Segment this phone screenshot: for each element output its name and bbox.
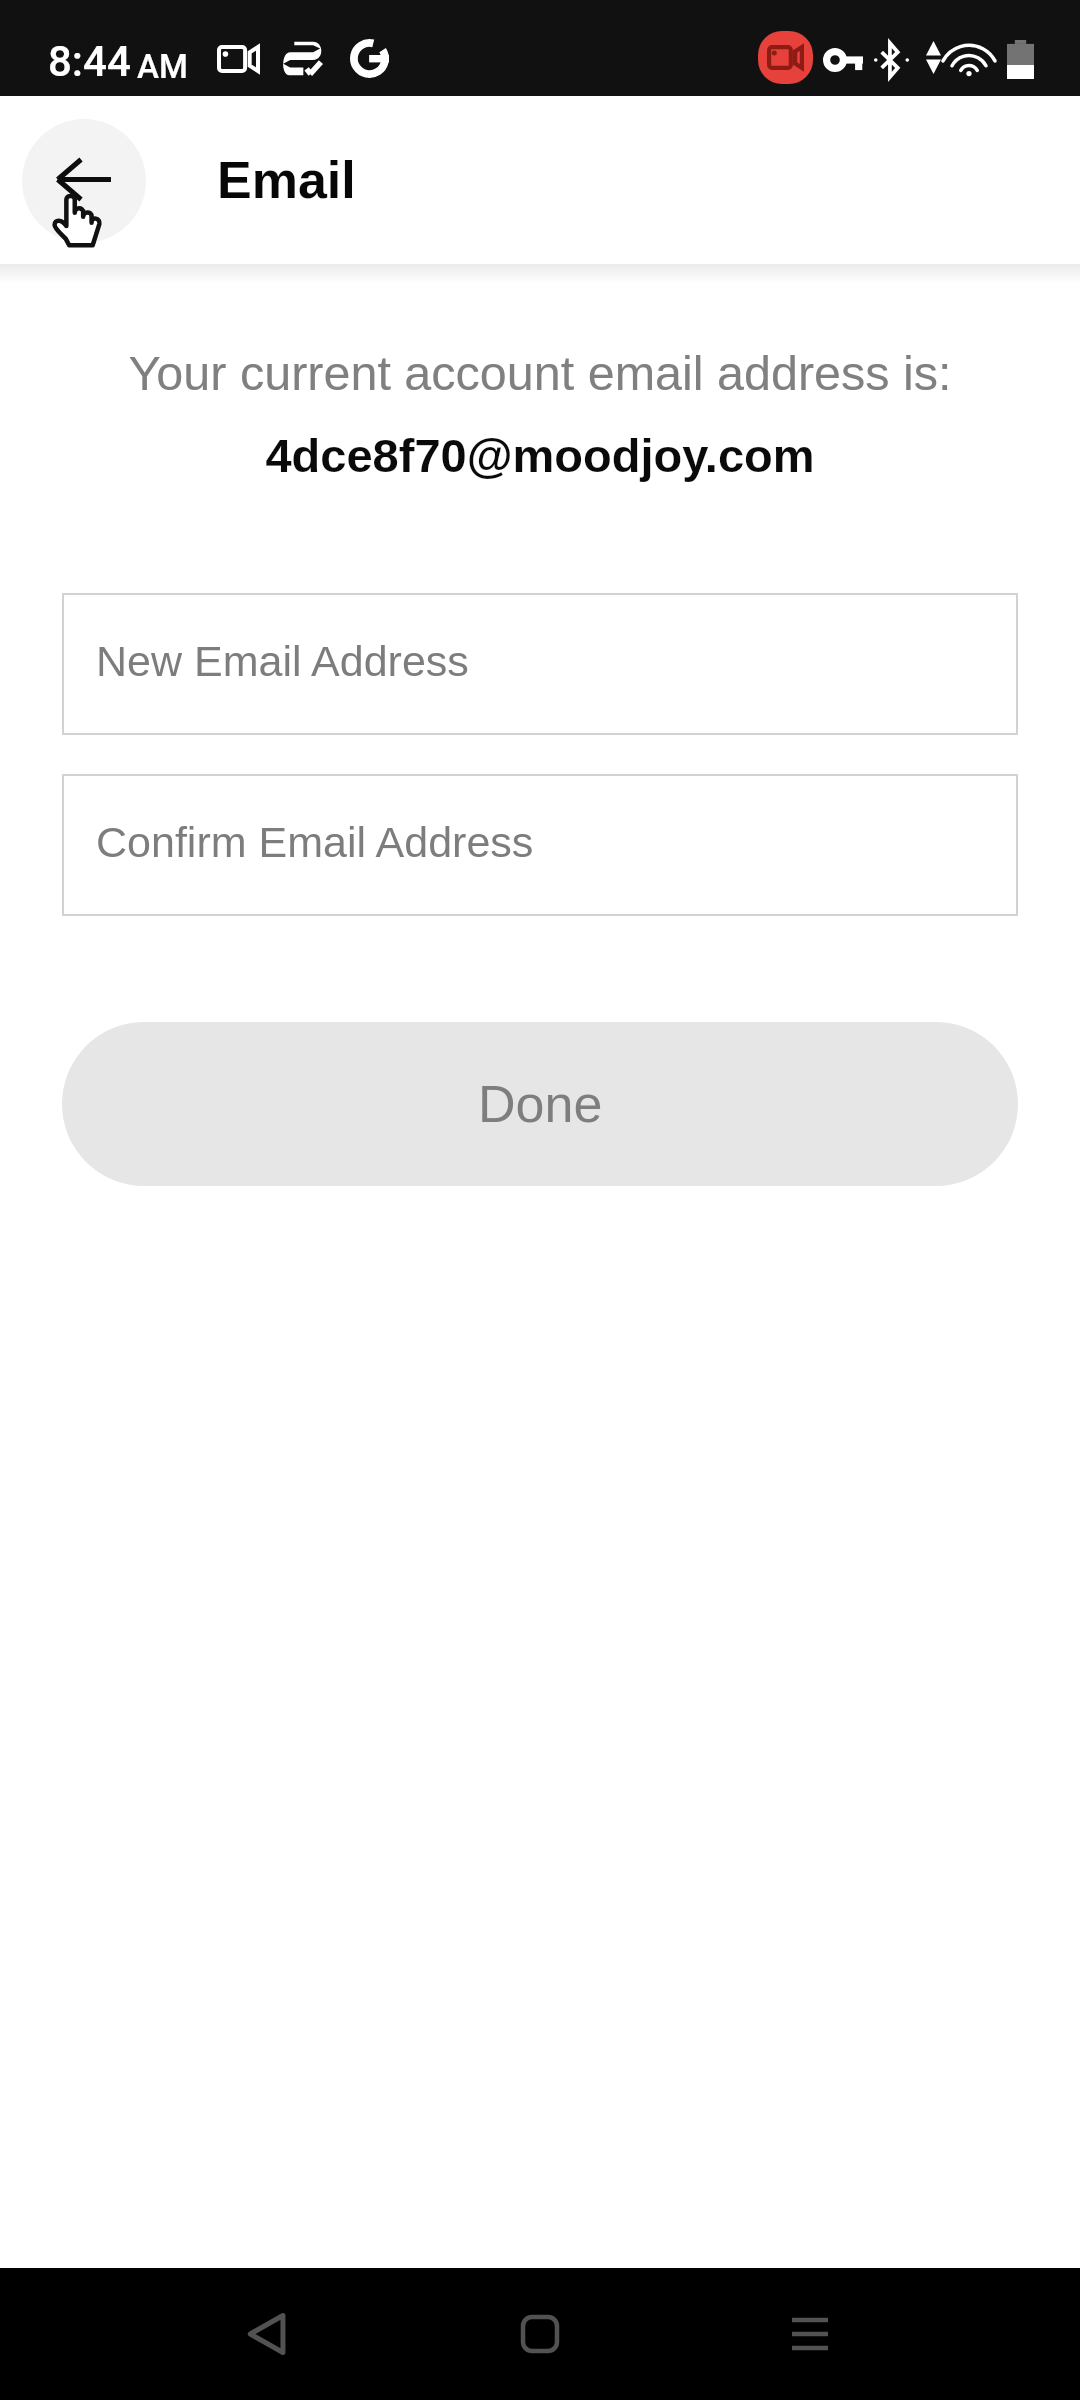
button[interactable]: Back: [213, 2268, 321, 2400]
staticText: Confirm Email Address: [96, 818, 534, 866]
button[interactable]: Confirm Email Address: [62, 774, 1018, 916]
staticText: Your current account email address is:: [0, 346, 1080, 400]
staticText: Email: [217, 151, 356, 209]
staticText: 8:44: [48, 37, 131, 86]
button[interactable]: Done: [62, 1022, 1018, 1186]
staticText: 4dce8f70@moodjoy.com: [0, 429, 1080, 482]
button[interactable]: Recent apps: [756, 2268, 864, 2400]
staticText: AM: [137, 47, 188, 86]
staticText: Done: [478, 1075, 603, 1133]
button[interactable]: New Email Address: [62, 593, 1018, 735]
staticText: New Email Address: [96, 637, 469, 685]
button[interactable]: Home: [486, 2268, 594, 2400]
button[interactable]: Back: [22, 119, 146, 243]
